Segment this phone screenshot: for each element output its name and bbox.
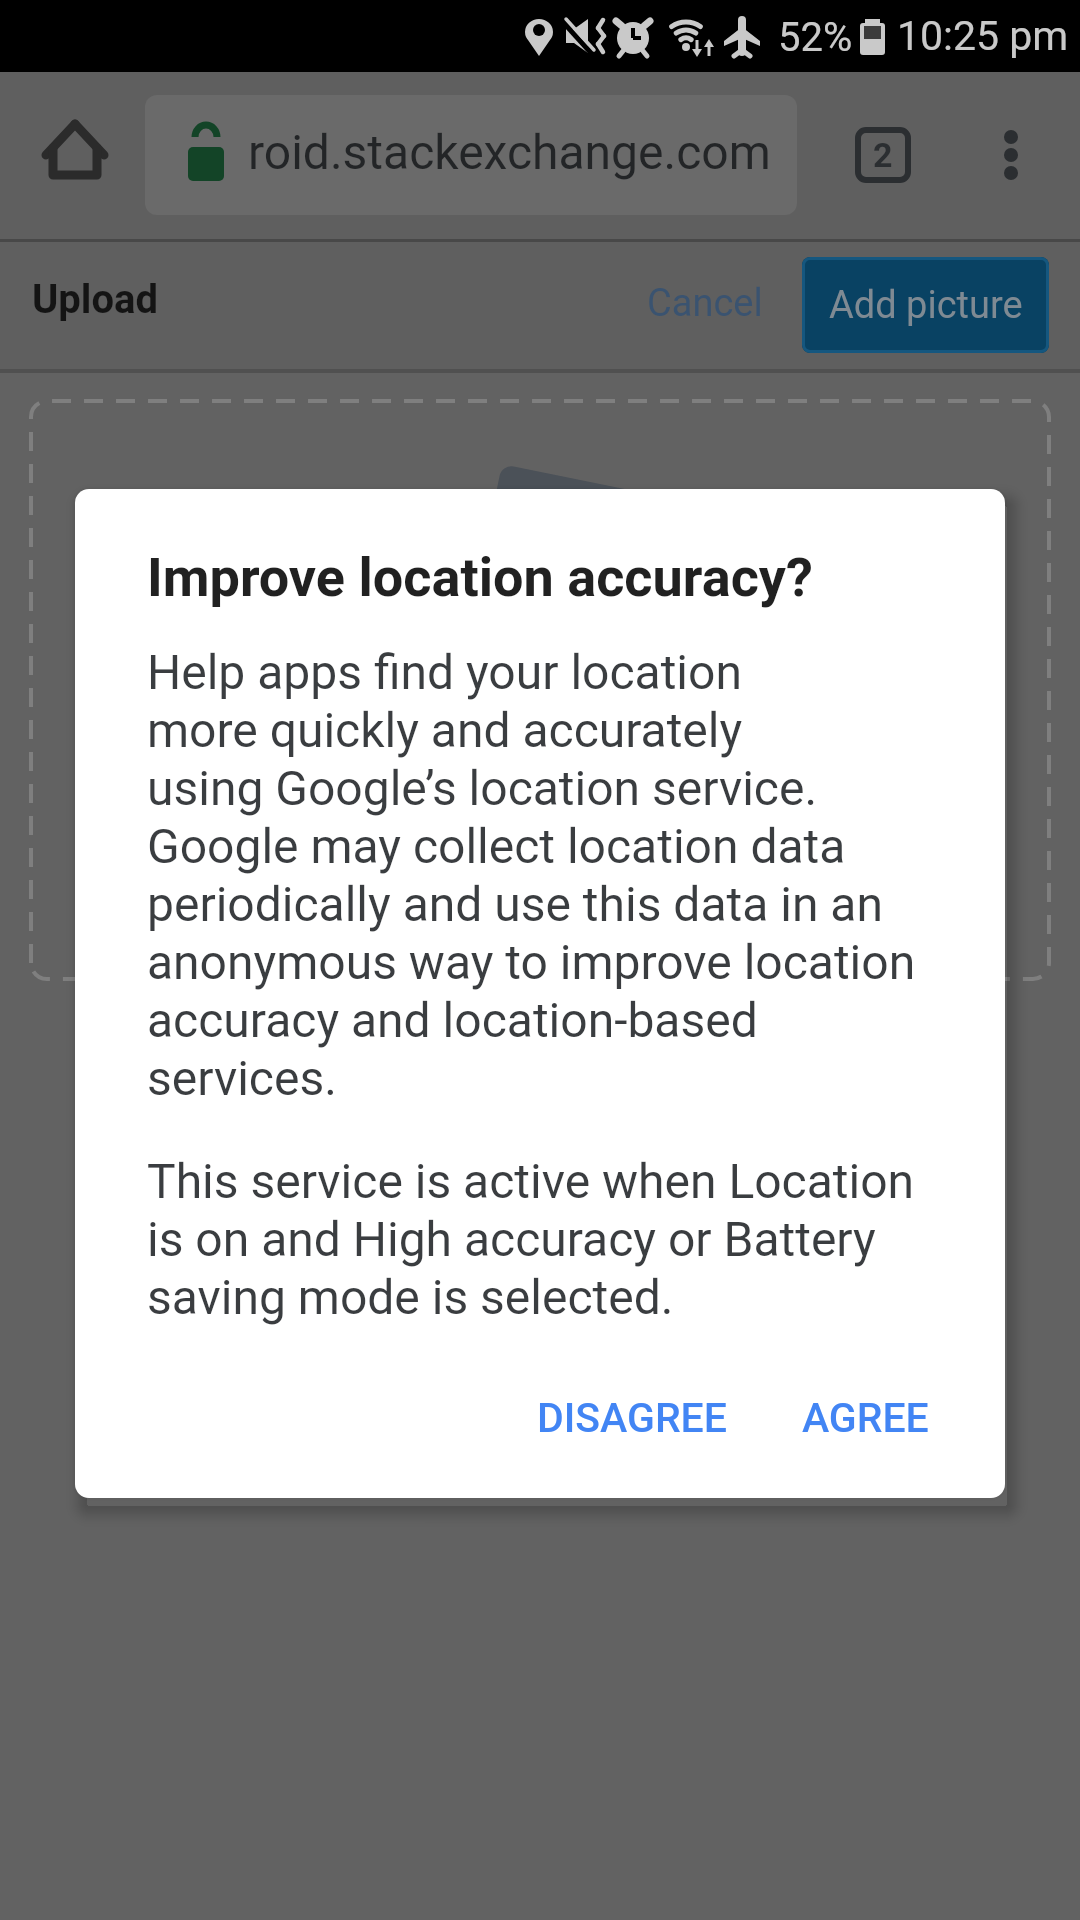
button[interactable]: DISAGREE — [512, 1366, 752, 1470]
staticText: Help apps find your location more quickl… — [147, 644, 916, 1106]
staticText: Cancel — [647, 281, 763, 326]
staticText: 2 — [873, 135, 893, 175]
staticText: Add picture — [829, 283, 1023, 328]
staticText: roid.stackexchange.com — [248, 124, 771, 180]
staticText: Improve location accuracy? — [147, 546, 813, 609]
button[interactable]: roid.stackexchange.com — [145, 95, 797, 215]
button[interactable]: Add picture — [802, 257, 1049, 353]
button[interactable]: AGREE — [775, 1366, 955, 1470]
button[interactable] — [985, 117, 1037, 193]
button[interactable] — [30, 115, 120, 190]
staticText: DISAGREE — [537, 1394, 727, 1442]
staticText: This service is active when Location is … — [147, 1153, 915, 1325]
button[interactable]: 2 — [855, 127, 911, 183]
staticText: Upload — [32, 276, 159, 323]
staticText: 10:25 pm — [897, 12, 1069, 60]
button[interactable]: Cancel — [630, 258, 780, 348]
staticText: AGREE — [802, 1394, 929, 1442]
staticText: 52% — [778, 14, 853, 61]
